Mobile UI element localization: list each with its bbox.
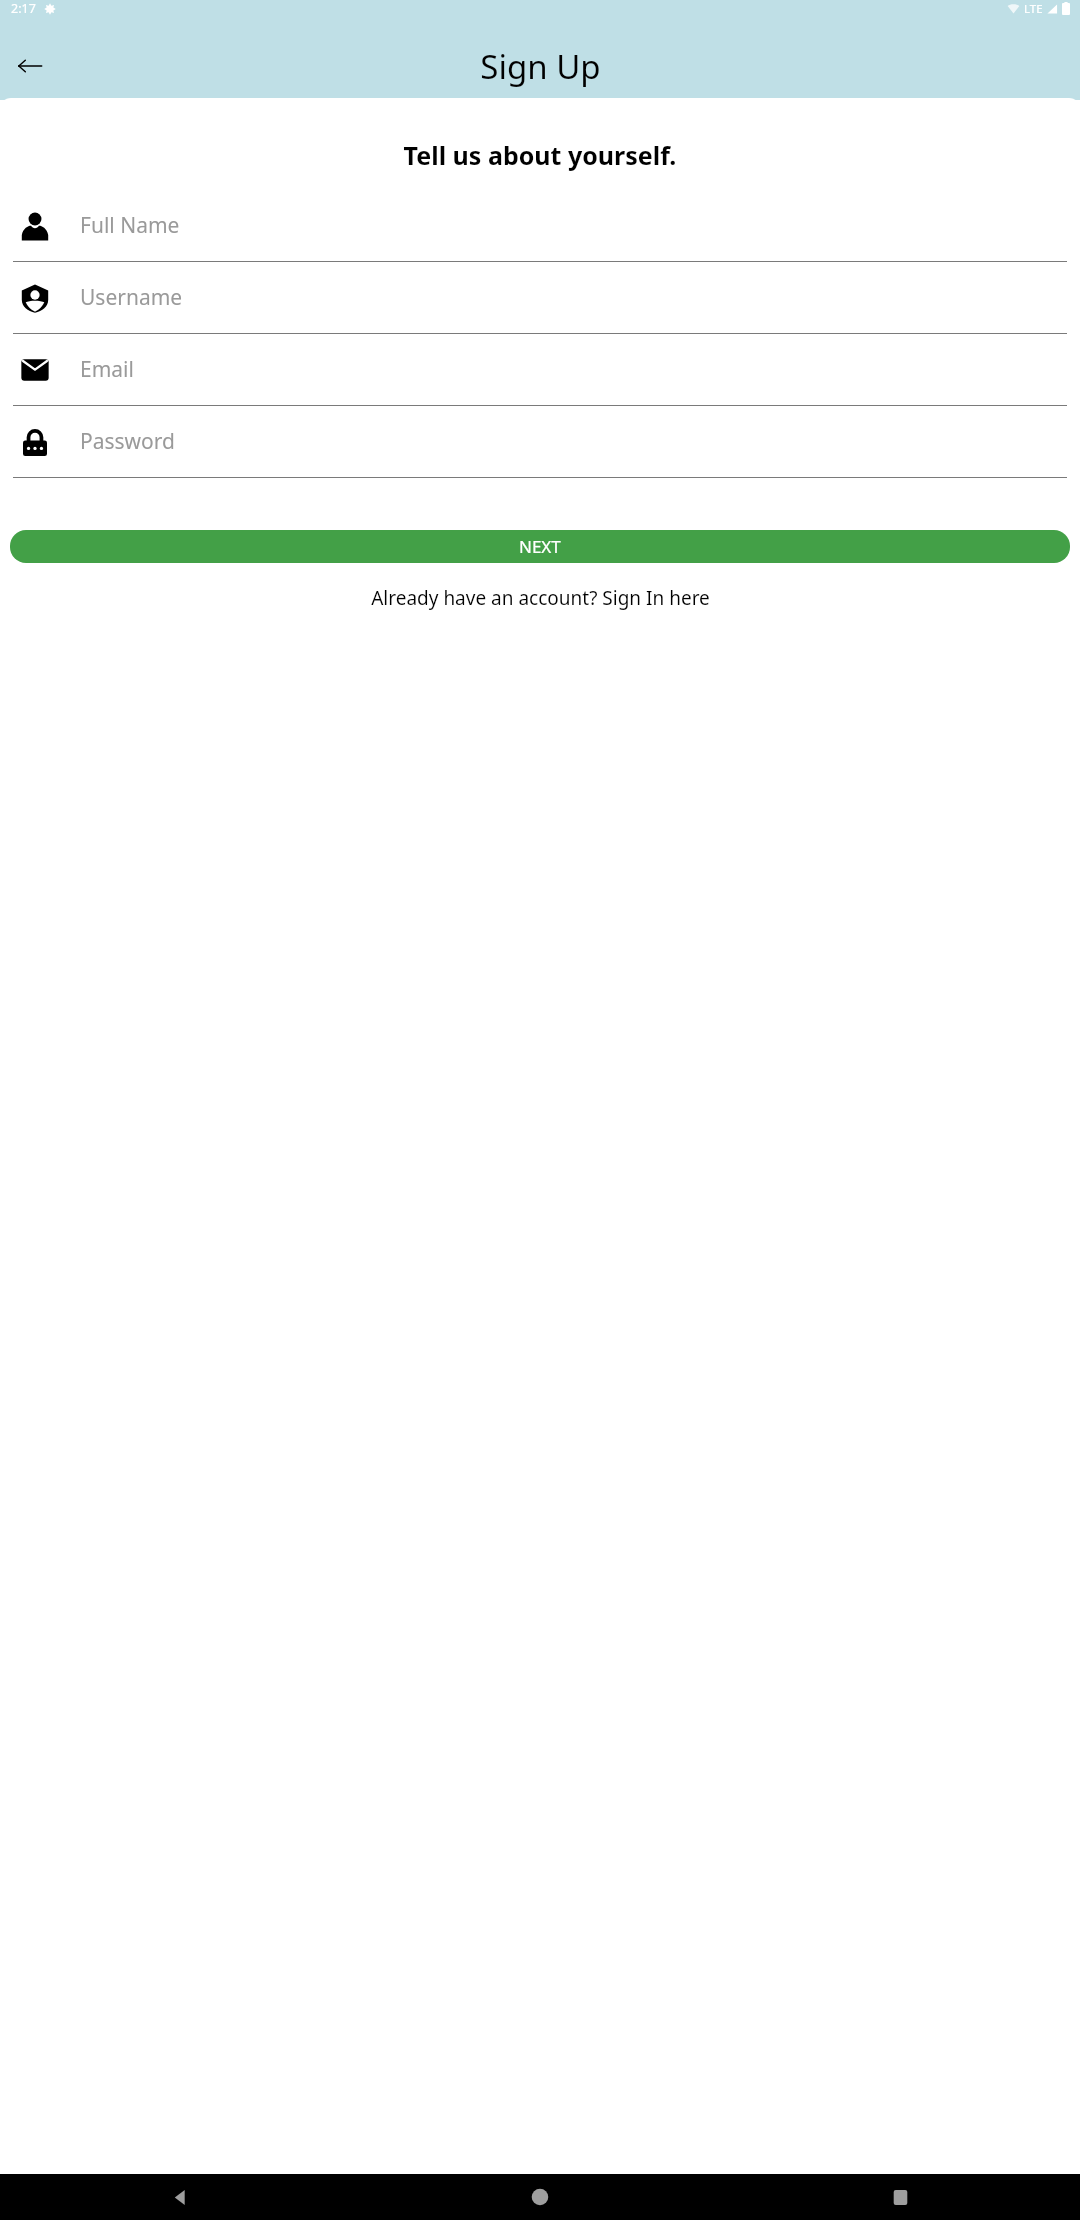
button[interactable]: Back xyxy=(0,2174,360,2220)
staticText: Username xyxy=(80,283,183,312)
button[interactable]: Home xyxy=(360,2174,720,2220)
button[interactable]: NEXT xyxy=(10,530,1070,563)
button[interactable]: Recents xyxy=(720,2174,1080,2220)
staticText: LTE xyxy=(1024,1,1043,17)
staticText: Sign Up xyxy=(480,44,601,89)
staticText: Already have an account? Sign In here xyxy=(371,585,710,611)
button[interactable]: Already have an account? Sign In here xyxy=(0,585,1080,611)
button[interactable]: Back xyxy=(6,42,54,90)
button[interactable]: Username xyxy=(13,262,1067,334)
staticText: Password xyxy=(80,427,175,456)
staticText: 2:17 xyxy=(11,0,36,17)
staticText: NEXT xyxy=(519,535,561,558)
staticText: Full Name xyxy=(80,211,180,240)
button[interactable]: Password xyxy=(13,406,1067,478)
button[interactable]: Email xyxy=(13,334,1067,406)
button[interactable]: Full Name xyxy=(13,190,1067,262)
staticText: Email xyxy=(80,355,134,384)
staticText: Tell us about yourself. xyxy=(0,138,1080,172)
